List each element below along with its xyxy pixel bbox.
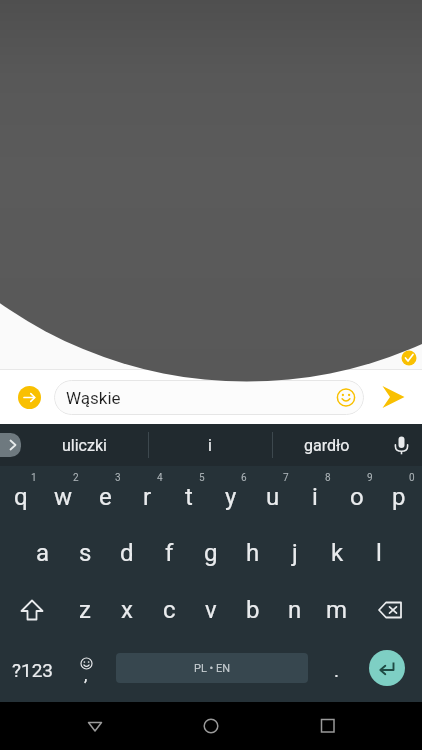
button[interactable]: Photo message: [0, 0, 422, 384]
button[interactable]: .: [312, 638, 362, 702]
button[interactable]: y: [210, 466, 252, 524]
staticText: d: [120, 539, 134, 567]
button[interactable]: PL • EN: [116, 653, 308, 683]
button[interactable]: p: [378, 466, 420, 524]
staticText: n: [288, 596, 302, 624]
staticText: t: [185, 483, 193, 511]
button[interactable]: Navigate: [69, 703, 121, 749]
staticText: 4: [157, 472, 163, 484]
staticText: o: [350, 483, 364, 511]
button[interactable]: e: [84, 466, 126, 524]
staticText: x: [121, 596, 133, 624]
staticText: e: [99, 483, 112, 511]
button[interactable]: l: [358, 524, 400, 581]
button[interactable]: h: [232, 524, 274, 581]
staticText: r: [143, 483, 152, 511]
staticText: f: [165, 539, 174, 567]
button[interactable]: x: [106, 581, 148, 638]
button[interactable]: Backspace: [358, 581, 422, 638]
staticText: PL • EN: [194, 662, 231, 675]
staticText: b: [246, 596, 260, 624]
button[interactable]: o: [336, 466, 378, 524]
button[interactable]: c: [148, 581, 190, 638]
button[interactable]: ?123: [0, 638, 66, 702]
button[interactable]: u: [252, 466, 294, 524]
staticText: w: [54, 483, 73, 511]
button[interactable]: a: [22, 524, 64, 581]
button[interactable]: Shift: [0, 581, 64, 638]
staticText: a: [36, 539, 50, 567]
staticText: 1: [31, 472, 37, 484]
staticText: h: [246, 539, 260, 567]
button[interactable]: Send: [376, 380, 410, 414]
button[interactable]: gardło: [272, 424, 381, 466]
staticText: 5: [199, 472, 205, 484]
button[interactable]: r: [126, 466, 168, 524]
staticText: .: [334, 659, 340, 681]
staticText: i: [208, 436, 212, 455]
staticText: 9: [367, 472, 373, 484]
staticText: j: [292, 539, 298, 567]
staticText: ,: [84, 665, 88, 685]
staticText: k: [331, 539, 344, 567]
button[interactable]: Enter: [369, 650, 405, 686]
button[interactable]: Emoji and comma: [66, 638, 106, 702]
staticText: s: [79, 539, 92, 567]
button[interactable]: d: [106, 524, 148, 581]
staticText: 2: [73, 472, 79, 484]
staticText: p: [392, 483, 406, 511]
button[interactable]: Show more options: [18, 386, 41, 409]
button[interactable]: b: [232, 581, 274, 638]
button[interactable]: q: [0, 466, 42, 524]
button[interactable]: t: [168, 466, 210, 524]
button[interactable]: v: [190, 581, 232, 638]
staticText: z: [79, 596, 91, 624]
button[interactable]: m: [316, 581, 358, 638]
staticText: q: [14, 483, 28, 511]
staticText: v: [205, 596, 217, 624]
button[interactable]: j: [274, 524, 316, 581]
staticText: i: [312, 483, 318, 511]
staticText: Wąskie: [66, 388, 121, 408]
staticText: l: [376, 539, 382, 567]
button[interactable]: Voice input: [381, 424, 422, 466]
staticText: uliczki: [62, 436, 107, 455]
button[interactable]: n: [274, 581, 316, 638]
button[interactable]: w: [42, 466, 84, 524]
staticText: y: [225, 483, 237, 511]
staticText: u: [266, 483, 280, 511]
staticText: 0: [409, 472, 415, 484]
staticText: 8: [325, 472, 331, 484]
button[interactable]: i: [148, 424, 272, 466]
staticText: 6: [241, 472, 247, 484]
button[interactable]: uliczki: [21, 424, 148, 466]
button[interactable]: Navigate: [185, 703, 237, 749]
staticText: g: [204, 539, 218, 567]
staticText: 3: [115, 472, 121, 484]
staticText: 7: [283, 472, 289, 484]
staticText: c: [163, 596, 176, 624]
staticText: m: [326, 596, 348, 624]
button[interactable]: k: [316, 524, 358, 581]
button[interactable]: s: [64, 524, 106, 581]
staticText: ?123: [12, 659, 54, 681]
staticText: gardło: [304, 436, 350, 455]
button[interactable]: Expand suggestions: [0, 433, 21, 457]
button[interactable]: z: [64, 581, 106, 638]
button[interactable]: i: [294, 466, 336, 524]
button[interactable]: Wąskie: [54, 380, 364, 415]
button[interactable]: f: [148, 524, 190, 581]
button[interactable]: g: [190, 524, 232, 581]
button[interactable]: Navigate: [302, 703, 354, 749]
